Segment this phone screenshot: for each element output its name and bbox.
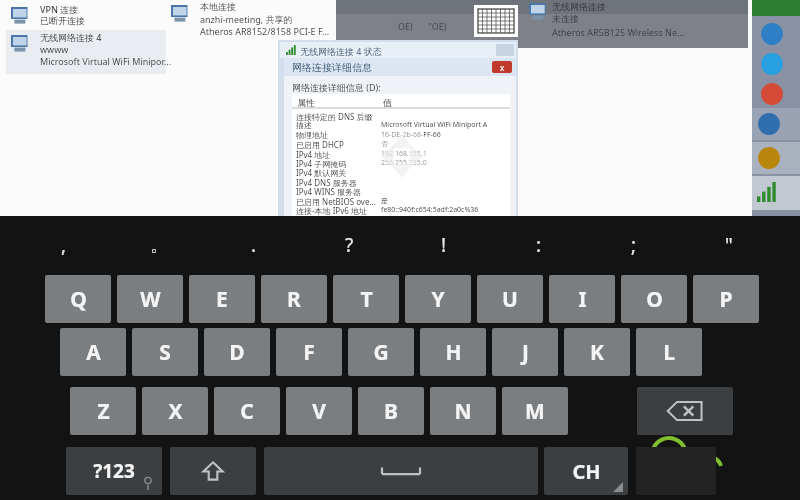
staticText: A [86, 338, 101, 367]
staticText: T [360, 285, 373, 314]
button[interactable]: A [60, 328, 126, 376]
button[interactable]: ! [396, 222, 492, 268]
staticText: R [287, 285, 301, 314]
staticText: 无线网络连接 [552, 1, 606, 12]
button[interactable]: G [348, 328, 414, 376]
staticText: Y [431, 285, 445, 314]
button[interactable]: Shift [170, 447, 256, 495]
staticText: "OE) [428, 20, 447, 32]
button[interactable]: O [621, 275, 687, 323]
button[interactable]: , [16, 222, 112, 268]
staticText: ! [441, 232, 447, 258]
staticText: x [500, 62, 505, 73]
staticText: 。 [150, 233, 169, 257]
staticText: 否 [381, 139, 388, 148]
button[interactable]: Space [264, 447, 538, 495]
staticText: 网络连接详细信息 (D): [292, 81, 381, 93]
button[interactable]: C [214, 387, 280, 435]
staticText: 连接-本地 IPv6 地址 [296, 205, 367, 216]
button[interactable]: F [276, 328, 342, 376]
staticText: 已断开连接 [40, 15, 85, 26]
staticText: anzhi-meeting, 共享的 [200, 13, 293, 25]
button[interactable]: D [204, 328, 270, 376]
staticText: 网络连接详细信息 [292, 61, 372, 74]
staticText: O [646, 285, 663, 314]
button[interactable]: U [477, 275, 543, 323]
staticText: VPN 连接 [40, 3, 79, 15]
button[interactable]: : [491, 222, 587, 268]
button[interactable]: 。 [111, 222, 207, 268]
staticText: 是 [381, 196, 388, 205]
staticText: U [502, 285, 518, 314]
staticText: : [536, 232, 542, 258]
staticText: C [240, 397, 254, 426]
button[interactable]: CH [544, 447, 628, 495]
staticText: 值 [383, 97, 392, 108]
button[interactable]: S [132, 328, 198, 376]
button[interactable]: T [333, 275, 399, 323]
button[interactable]: X [142, 387, 208, 435]
staticText: H [445, 338, 462, 367]
staticText: . [251, 232, 257, 258]
staticText: Q [70, 285, 87, 314]
button[interactable]: P [693, 275, 759, 323]
button[interactable]: 本地连接 [166, 0, 326, 44]
button[interactable]: Q [45, 275, 111, 323]
staticText: ?123 [93, 458, 135, 484]
staticText: 已启用 NetBIOS ove... [296, 196, 376, 207]
button[interactable]: ? [301, 222, 397, 268]
button[interactable]: E [189, 275, 255, 323]
staticText: 16-DE-2b-68-FF-66 [381, 130, 441, 140]
button[interactable]: I [549, 275, 615, 323]
staticText: Z [97, 397, 110, 426]
staticText: Microsoft Virtual WiFi Minipor... [40, 55, 172, 67]
button[interactable]: 无线网络连接 4 [6, 30, 166, 74]
staticText: Atheros AR5B125 Wireless Ne... [552, 26, 685, 38]
button[interactable]: J [492, 328, 558, 376]
button[interactable]: B [358, 387, 424, 435]
staticText: 物理地址 [296, 130, 328, 140]
staticText: WAN Miniport (IKEv2) [40, 27, 131, 39]
button[interactable]: H [420, 328, 486, 376]
staticText: Atheros AR8152/8158 PCI-E F... [200, 25, 330, 37]
staticText: P [719, 285, 733, 314]
staticText: D [229, 338, 245, 367]
button[interactable]: L [636, 328, 702, 376]
staticText: 无线网络连接 4 [40, 31, 102, 43]
button[interactable]: ; [586, 222, 682, 268]
button[interactable]: Close dialog [492, 61, 512, 73]
button[interactable]: VPN 连接 [6, 2, 166, 46]
staticText: ? [345, 232, 354, 258]
button[interactable]: V [286, 387, 352, 435]
button[interactable]: R [261, 275, 327, 323]
button[interactable]: Z [70, 387, 136, 435]
staticText: OE) [398, 20, 413, 32]
staticText: wwww [40, 43, 69, 55]
staticText: 255.255.255.0 [381, 158, 427, 168]
staticText: 已启用 DHCP [296, 139, 344, 150]
button[interactable]: ?123 [66, 447, 162, 495]
button[interactable]: N [430, 387, 496, 435]
staticText: S [159, 338, 171, 367]
button[interactable]: Y [405, 275, 471, 323]
button[interactable]: . [206, 222, 302, 268]
staticText: E [216, 285, 228, 314]
staticText: 无线网络连接 4 状态 [300, 45, 382, 57]
staticText: X [168, 397, 183, 426]
staticText: 描述 [296, 120, 312, 130]
button[interactable]: M [502, 387, 568, 435]
button[interactable]: Backspace [637, 387, 733, 435]
button[interactable]: W [117, 275, 183, 323]
staticText: G [373, 338, 389, 367]
staticText: B [384, 397, 398, 426]
staticText: 192.168.155.1 [381, 149, 427, 159]
staticText: J [522, 338, 529, 367]
staticText: IPv4 地址 [296, 149, 331, 160]
button[interactable]: K [564, 328, 630, 376]
button[interactable]: " [681, 222, 777, 268]
staticText: IPv4 默认网关 [296, 167, 347, 178]
staticText: 未连接 [552, 13, 579, 24]
staticText: K [590, 338, 604, 367]
